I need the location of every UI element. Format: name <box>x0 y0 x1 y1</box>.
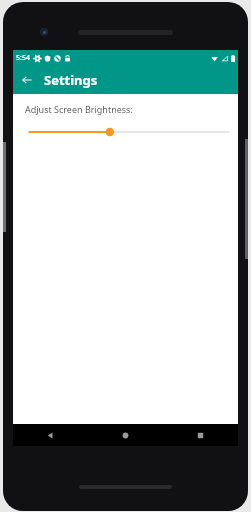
button[interactable]: Home <box>88 424 163 446</box>
button[interactable]: Screen brightness slider <box>13 123 238 141</box>
button[interactable]: Recent apps <box>163 424 238 446</box>
staticText: 5:54 <box>16 53 30 63</box>
staticText: Settings <box>44 71 98 89</box>
button[interactable]: Back <box>13 424 88 446</box>
button[interactable]: Back <box>17 70 37 90</box>
staticText: Adjust Screen Brightness: <box>25 103 133 115</box>
